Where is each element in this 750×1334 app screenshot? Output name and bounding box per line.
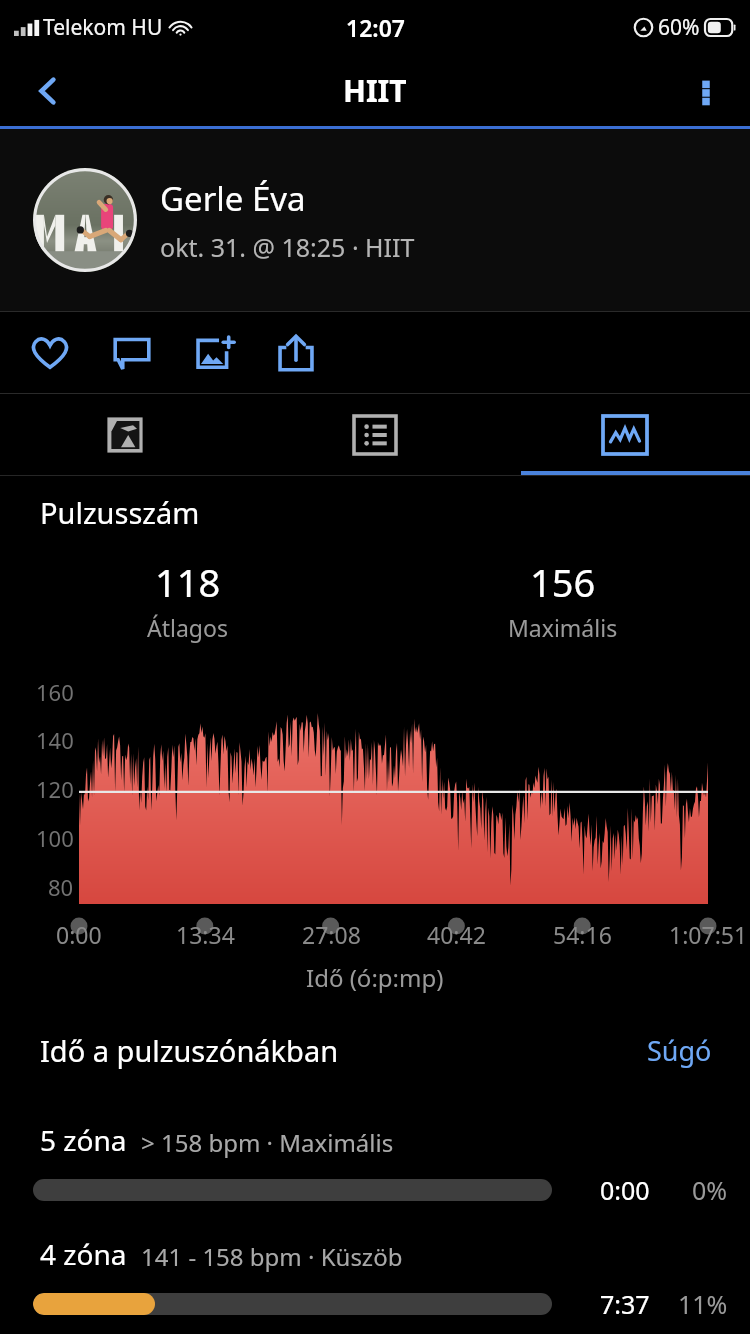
- staticText: 27:08: [302, 919, 361, 950]
- staticText: 60%: [658, 13, 700, 42]
- staticText: Idő a pulzuszónákban: [40, 1031, 339, 1070]
- staticText: 80: [48, 872, 74, 902]
- button[interactable]: Share: [268, 325, 324, 381]
- staticText: Idő (ó:p:mp): [306, 961, 444, 994]
- staticText: 156: [530, 556, 596, 608]
- staticText: 141 - 158 bpm · Küszöb: [141, 1240, 403, 1273]
- staticText: 4 zóna: [40, 1235, 127, 1273]
- staticText: 1:07:51: [669, 919, 748, 950]
- staticText: Gerle Éva: [160, 176, 306, 221]
- staticText: 7:37: [600, 1287, 650, 1321]
- staticText: Pulzusszám: [40, 493, 200, 532]
- button[interactable]: 4 zóna: [0, 1235, 750, 1321]
- staticText: 160: [36, 677, 74, 707]
- staticText: > 158 bpm · Maximális: [141, 1126, 394, 1159]
- staticText: 5 zóna: [40, 1121, 127, 1159]
- button[interactable]: Like: [22, 325, 78, 381]
- staticText: 54:16: [553, 919, 612, 950]
- staticText: 12:07: [346, 12, 405, 43]
- button[interactable]: Map tab: [0, 394, 250, 475]
- staticText: HIIT: [343, 70, 407, 111]
- staticText: 140: [36, 725, 74, 755]
- button[interactable]: Gerle Éva: [0, 129, 750, 311]
- staticText: 0:00: [56, 919, 102, 950]
- staticText: 13:34: [176, 919, 235, 950]
- button[interactable]: Súgó: [639, 1024, 720, 1077]
- button[interactable]: 5 zóna: [0, 1121, 750, 1207]
- staticText: 120: [36, 774, 74, 804]
- staticText: Maximális: [508, 612, 618, 643]
- button[interactable]: Back: [20, 63, 76, 119]
- staticText: 0%: [692, 1173, 728, 1207]
- button[interactable]: Graph tab: [500, 394, 750, 475]
- button[interactable]: List tab: [250, 394, 500, 475]
- button[interactable]: Comment: [104, 325, 160, 381]
- staticText: 11%: [678, 1287, 728, 1321]
- staticText: Súgó: [647, 1032, 712, 1069]
- staticText: okt. 31. @ 18:25 · HIIT: [160, 230, 415, 264]
- staticText: Átlagos: [147, 612, 228, 643]
- staticText: 0:00: [600, 1173, 650, 1207]
- button[interactable]: Add photo: [186, 325, 242, 381]
- button[interactable]: More options: [678, 63, 734, 119]
- staticText: 40:42: [427, 919, 486, 950]
- staticText: 118: [155, 556, 221, 608]
- staticText: Telekom HU: [43, 13, 163, 42]
- staticText: 100: [36, 823, 74, 853]
